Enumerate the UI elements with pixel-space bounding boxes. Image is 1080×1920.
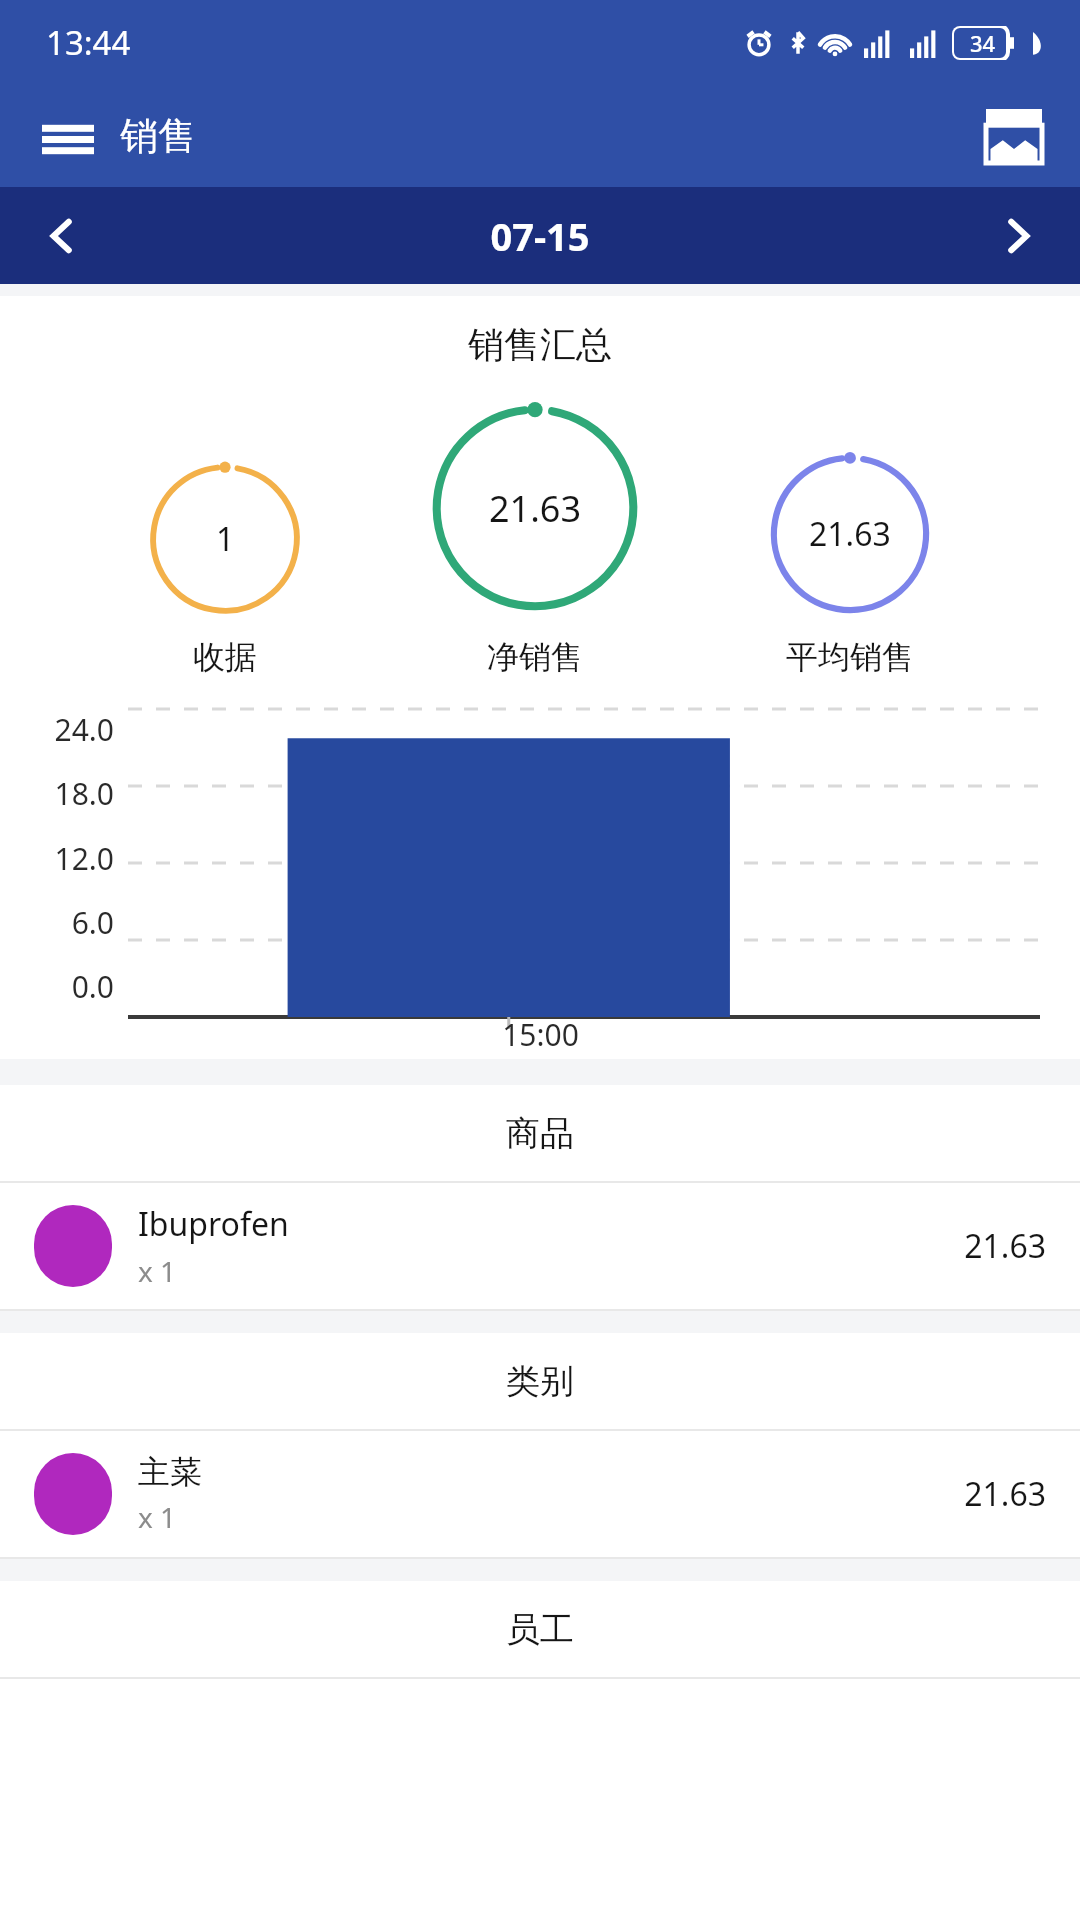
staticText: 平均销售	[786, 637, 914, 677]
staticText: 类别	[506, 1360, 574, 1403]
staticText: 销售汇总	[0, 322, 1080, 367]
staticText: 商品	[506, 1112, 574, 1155]
staticText: x 1	[138, 1498, 177, 1536]
button[interactable]: 主菜	[0, 1431, 1080, 1557]
staticText: 收据	[193, 637, 257, 677]
staticText: Ibuprofen	[138, 1202, 289, 1246]
button[interactable]: 员工	[0, 1581, 1080, 1677]
button[interactable]: Store	[982, 104, 1046, 168]
staticText: 1	[216, 517, 235, 561]
button[interactable]: Next day	[980, 198, 1056, 274]
staticText: 12.0	[54, 838, 114, 879]
staticText: 07-15	[490, 210, 590, 262]
staticText: 员工	[506, 1608, 574, 1651]
staticText: 21.63	[964, 1224, 1046, 1268]
button[interactable]: Previous day	[24, 198, 100, 274]
staticText: 21.63	[489, 484, 582, 533]
staticText: 13:44	[46, 20, 131, 65]
staticText: 24.0	[54, 709, 114, 750]
staticText: 21.63	[964, 1472, 1046, 1516]
button[interactable]: Menu	[36, 106, 202, 166]
staticText: x 1	[138, 1252, 177, 1290]
button[interactable]: 商品	[0, 1085, 1080, 1181]
staticText: 18.0	[54, 773, 114, 814]
staticText: 销售	[120, 112, 196, 160]
staticText: 6.0	[71, 902, 114, 943]
staticText: 21.63	[809, 512, 891, 556]
staticText: 主菜	[138, 1452, 202, 1492]
staticText: 15:00	[502, 1014, 579, 1055]
staticText: 0.0	[71, 966, 114, 1007]
staticText: 净销售	[487, 637, 583, 677]
other: Menu	[42, 116, 94, 156]
staticText: 34	[970, 28, 996, 58]
button[interactable]: Ibuprofen	[0, 1183, 1080, 1309]
button[interactable]: 类别	[0, 1333, 1080, 1429]
